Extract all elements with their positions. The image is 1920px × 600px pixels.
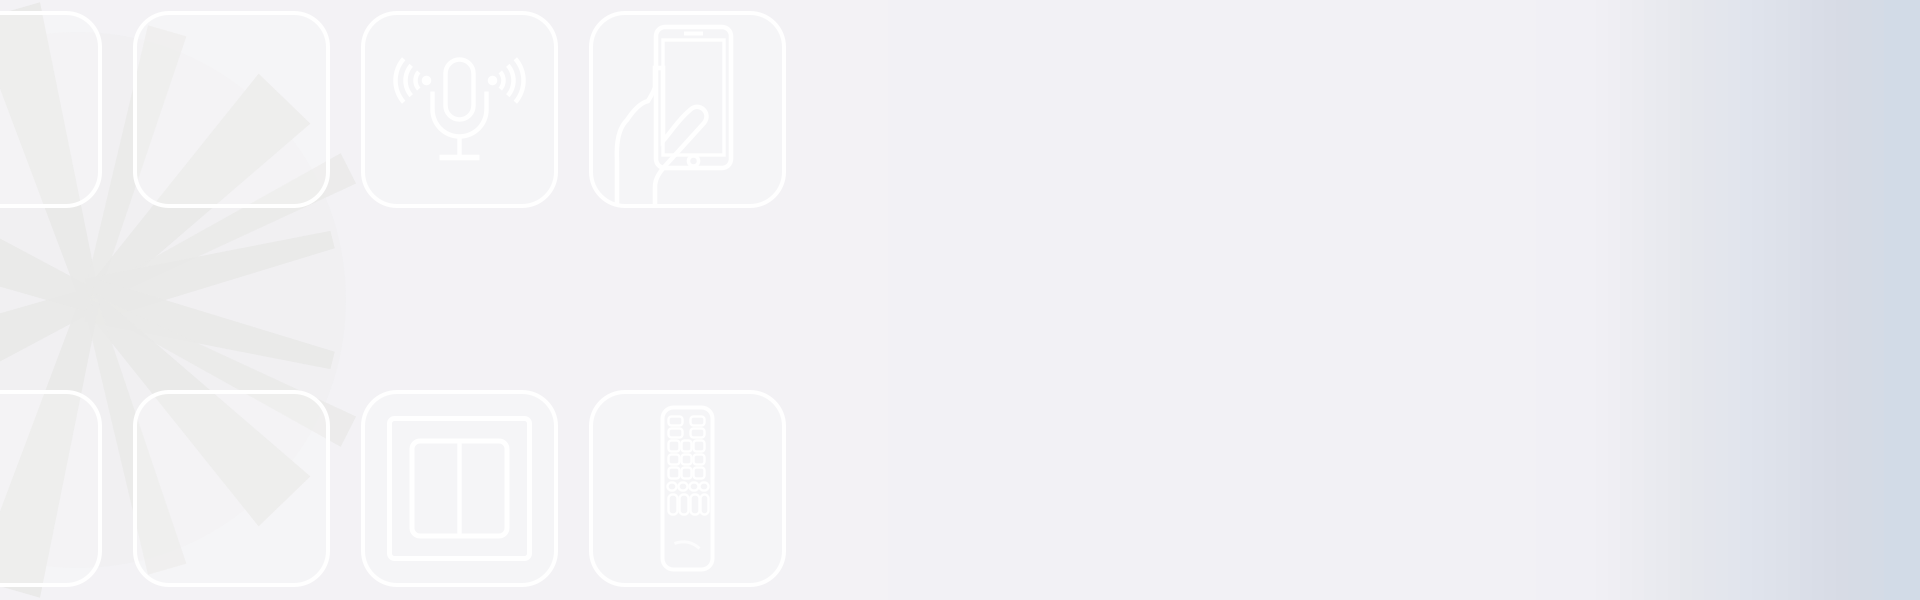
button[interactable]: Feature [0, 392, 100, 585]
button[interactable]: Feature [135, 13, 328, 206]
button[interactable]: Feature [0, 13, 100, 206]
button[interactable]: Wall switch [363, 392, 556, 585]
button[interactable]: App control [591, 13, 784, 206]
button[interactable]: Remote control [591, 392, 784, 585]
button[interactable]: Feature [135, 392, 328, 585]
button[interactable]: Voice control [363, 13, 556, 206]
